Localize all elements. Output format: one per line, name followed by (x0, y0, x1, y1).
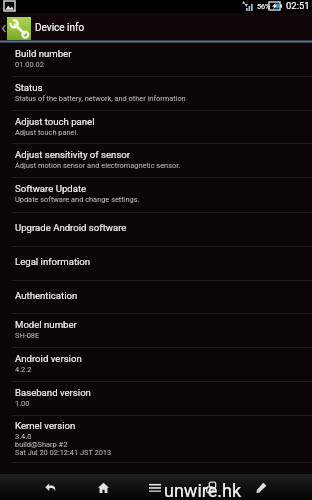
button[interactable]: Back (0, 13, 7, 43)
staticText: Baseband version (15, 387, 91, 398)
staticText: Model number (15, 319, 77, 330)
button[interactable]: Adjust touch panel (0, 111, 312, 144)
button[interactable]: Build number (0, 43, 312, 77)
button[interactable]: Kernel version (0, 416, 312, 463)
staticText: 01.00.02 (15, 60, 44, 69)
staticText: Status of the battery, network, and othe… (15, 94, 186, 103)
button[interactable]: Software Update (0, 178, 312, 213)
button[interactable]: Android version (0, 348, 312, 382)
staticText: 1.00 (15, 399, 30, 408)
staticText: 56% (257, 2, 271, 10)
button[interactable]: Upgrade Android software (0, 213, 312, 247)
staticText: 02:51 (286, 0, 310, 11)
button[interactable]: Menu (135, 474, 175, 500)
button[interactable]: Recent apps (191, 474, 231, 500)
staticText: Adjust touch panel (15, 116, 95, 127)
button[interactable]: Back (30, 474, 70, 500)
staticText: Update software and change settings. (15, 195, 140, 204)
staticText: Android version (15, 353, 82, 364)
staticText: Adjust motion sensor and electromagnetic… (15, 161, 181, 170)
button[interactable]: Legal information (0, 247, 312, 281)
staticText: build@Sharp #2 (15, 440, 68, 449)
staticText: Sat Jul 20 02:12:41 JST 2013 (15, 448, 112, 457)
staticText: 4.2.2 (15, 365, 32, 374)
button[interactable]: Device info (7, 13, 85, 43)
staticText: Software Update (15, 183, 87, 194)
staticText: 3.4.0 (15, 432, 32, 441)
button[interactable]: Authentication (0, 281, 312, 314)
staticText: Adjust touch panel. (15, 128, 79, 137)
staticText: SH-08E (15, 331, 40, 340)
staticText: Adjust sensitivity of sensor (15, 149, 131, 160)
staticText: Kernel version (15, 420, 76, 431)
button[interactable]: Adjust sensitivity of sensor (0, 144, 312, 178)
staticText: Device info (35, 22, 85, 34)
staticText: Upgrade Android software (15, 222, 127, 233)
staticText: unwire.hk (164, 480, 242, 500)
button[interactable]: Baseband version (0, 382, 312, 416)
staticText: Build number (15, 48, 72, 59)
staticText: Legal information (15, 256, 91, 267)
button[interactable]: Edit (241, 474, 281, 500)
button[interactable]: Status (0, 77, 312, 111)
button[interactable]: Home (83, 474, 123, 500)
button[interactable]: Model number (0, 314, 312, 348)
staticText: Authentication (15, 290, 78, 301)
staticText: Status (15, 82, 43, 93)
